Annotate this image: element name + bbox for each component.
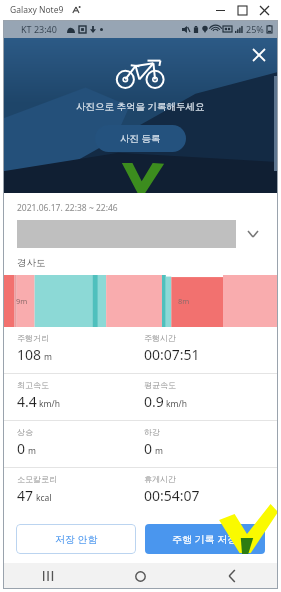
staticText: 사진으로 추억을 기록해두세요 (76, 100, 205, 113)
staticText: km/h (166, 398, 187, 410)
staticText: 8m (178, 296, 190, 306)
staticText: 주행시간 (144, 333, 176, 343)
button[interactable]: Maximize (231, 2, 253, 18)
staticText: m (44, 351, 52, 363)
staticText: 사진 등록 (120, 132, 161, 145)
button[interactable]: Back (186, 563, 278, 589)
staticText: 108 (17, 345, 42, 364)
button[interactable]: 저장 안함 (16, 524, 136, 554)
staticText: m (28, 445, 36, 457)
staticText: 00:54:07 (144, 486, 200, 505)
staticText: 주행 기록 저장 (172, 532, 238, 546)
staticText: 00:07:51 (144, 345, 200, 364)
button[interactable]: Minimize (209, 2, 231, 18)
button[interactable]: Recent apps (3, 563, 94, 589)
button[interactable]: Expand (236, 220, 270, 248)
button[interactable]: 사진 등록 (95, 125, 186, 152)
staticText: km/h (39, 398, 60, 410)
staticText: 2021.06.17. 22:38 ~ 22:46 (17, 202, 118, 214)
staticText: 상승 (17, 427, 33, 437)
staticText: 최고속도 (17, 380, 49, 390)
staticText: kcal (36, 492, 52, 504)
staticText: 4.4 (17, 392, 37, 411)
staticText: 9m (16, 296, 28, 306)
staticText: Galaxy Note9 (10, 4, 64, 16)
button[interactable]: 주행 기록 저장 (145, 524, 265, 554)
staticText: 0 (17, 439, 26, 458)
staticText: 평균속도 (144, 380, 176, 390)
button[interactable]: Close (246, 42, 272, 68)
staticText: 47 (17, 486, 34, 505)
button[interactable]: Close (253, 2, 275, 18)
staticText: 주행거리 (17, 333, 49, 343)
staticText: 0.9 (144, 392, 164, 411)
staticText: 경사도 (17, 257, 46, 269)
button[interactable]: Home (94, 563, 186, 589)
staticText: 하강 (144, 427, 160, 437)
staticText: 25% (246, 23, 264, 35)
staticText: m (155, 445, 163, 457)
staticText: 소모칼로리 (17, 474, 57, 484)
staticText: 0 (144, 439, 153, 458)
staticText: 휴게시간 (144, 474, 176, 484)
staticText: 저장 안함 (55, 532, 98, 546)
staticText: KT 23:40 (21, 23, 57, 35)
